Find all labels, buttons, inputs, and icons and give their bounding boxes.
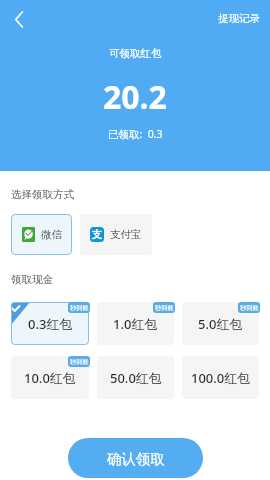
button[interactable]: 100.0红包 (182, 356, 259, 399)
button[interactable]: 提现记录 (208, 5, 270, 32)
staticText: 5.0红包 (198, 315, 243, 333)
button[interactable]: 微信 (11, 214, 72, 255)
button[interactable]: Back (4, 5, 33, 34)
staticText: 100.0红包 (191, 369, 251, 387)
button[interactable]: 10.0红包 (11, 356, 89, 399)
staticText: 秒到账 (155, 304, 174, 312)
staticText: 已领取: 0.3 (108, 127, 163, 141)
button[interactable]: 0.3红包 (11, 302, 89, 345)
button[interactable]: 50.0红包 (97, 356, 174, 399)
staticText: 1.0红包 (113, 315, 158, 333)
staticText: 支付宝 (110, 228, 142, 241)
staticText: 提现记录 (218, 12, 260, 25)
button[interactable]: 1.0红包 (97, 302, 174, 345)
staticText: 确认领取 (107, 450, 165, 468)
staticText: 50.0红包 (110, 369, 162, 387)
button[interactable]: 确认领取 (68, 438, 203, 478)
staticText: 10.0红包 (24, 369, 76, 387)
staticText: 可领取红包 (109, 47, 162, 60)
staticText: 支 (92, 228, 102, 241)
staticText: 领取现金 (11, 273, 53, 286)
staticText: 微信 (41, 228, 62, 241)
staticText: 20.2 (103, 75, 167, 119)
staticText: 0.3红包 (28, 315, 73, 333)
button[interactable]: 5.0红包 (182, 302, 259, 345)
staticText: 秒到账 (70, 304, 89, 312)
button[interactable]: 支 (80, 214, 152, 255)
staticText: 选择领取方式 (11, 188, 74, 201)
staticText: 秒到账 (70, 358, 89, 366)
staticText: 秒到账 (240, 304, 259, 312)
